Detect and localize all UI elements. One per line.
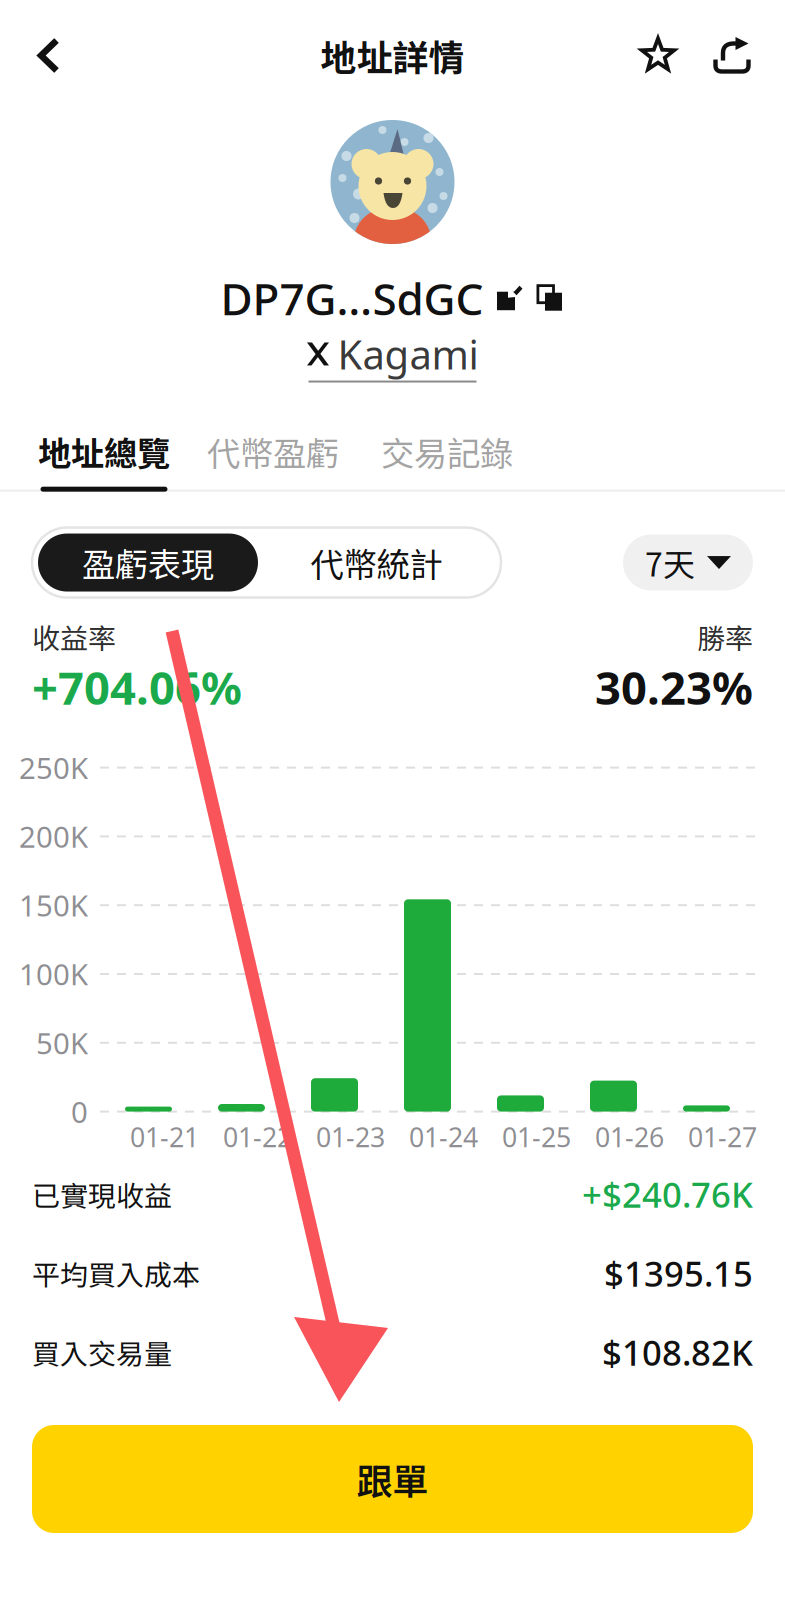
button[interactable]: Favorite <box>620 0 696 111</box>
staticText: +$240.76K <box>582 1171 753 1217</box>
staticText: $108.82K <box>602 1329 753 1375</box>
staticText: 地址詳情 <box>320 29 464 81</box>
staticText: 200K <box>19 817 88 856</box>
staticText: 100K <box>19 954 88 993</box>
staticText: 7天 <box>645 539 695 586</box>
staticText: 150K <box>19 886 88 925</box>
staticText: 地址總覽 <box>38 427 170 476</box>
button[interactable]: 跟單 <box>32 1425 753 1533</box>
button[interactable]: Back <box>0 0 98 111</box>
staticText: 50K <box>36 1023 88 1062</box>
staticText: 代幣盈虧 <box>207 427 339 476</box>
staticText: 交易記錄 <box>381 427 513 476</box>
staticText: $1395.15 <box>604 1250 753 1296</box>
staticText: Kagami <box>337 327 478 380</box>
staticText: 250K <box>19 748 88 787</box>
staticText: 01-25 <box>502 1119 571 1155</box>
staticText: +704.06% <box>32 657 242 717</box>
button[interactable]: Rename <box>496 285 523 312</box>
staticText: 收益率 <box>32 616 116 657</box>
staticText: 已實現收益 <box>32 1174 172 1214</box>
button[interactable]: 代幣盈虧 <box>207 427 339 492</box>
button[interactable]: Share <box>696 0 768 111</box>
button[interactable]: 代幣統計 <box>258 533 495 591</box>
staticText: 01-21 <box>130 1119 199 1155</box>
button[interactable]: Kagami <box>306 327 478 382</box>
staticText: 30.23% <box>595 657 753 717</box>
button[interactable]: 7天 <box>623 534 753 590</box>
button[interactable]: 交易記錄 <box>381 427 513 492</box>
staticText: 01-27 <box>688 1119 757 1155</box>
button[interactable]: Copy address <box>536 284 564 312</box>
staticText: 平均買入成本 <box>32 1253 200 1293</box>
staticText: 勝率 <box>697 616 753 657</box>
staticText: 01-24 <box>409 1119 478 1155</box>
button[interactable]: 盈虧表現 <box>38 533 258 591</box>
button[interactable]: 地址總覽 <box>38 427 170 492</box>
staticText: 01-26 <box>595 1119 664 1155</box>
staticText: 代幣統計 <box>310 538 442 587</box>
staticText: 買入交易量 <box>32 1332 172 1372</box>
staticText: 0 <box>71 1092 88 1131</box>
staticText: DP7G…SdGC <box>220 269 483 327</box>
staticText: 01-22 <box>223 1119 292 1155</box>
staticText: 盈虧表現 <box>82 538 214 587</box>
staticText: 跟單 <box>356 1453 428 1505</box>
staticText: 01-23 <box>316 1119 385 1155</box>
